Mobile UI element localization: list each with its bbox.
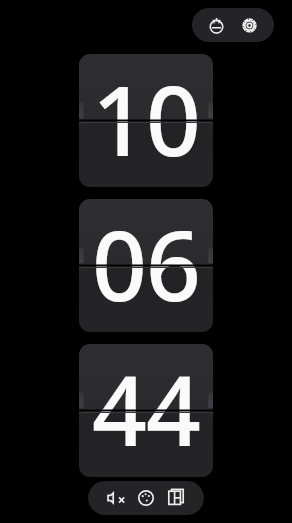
- button[interactable]: Settings: [236, 12, 263, 39]
- button[interactable]: Layout: [162, 484, 190, 512]
- staticText: 44: [92, 343, 200, 474]
- staticText: 10: [92, 53, 200, 184]
- button[interactable]: Theme: [132, 484, 160, 512]
- button[interactable]: Mute: [102, 484, 130, 512]
- staticText: 06: [92, 198, 200, 329]
- button[interactable]: Pomodoro timer: [203, 12, 230, 39]
